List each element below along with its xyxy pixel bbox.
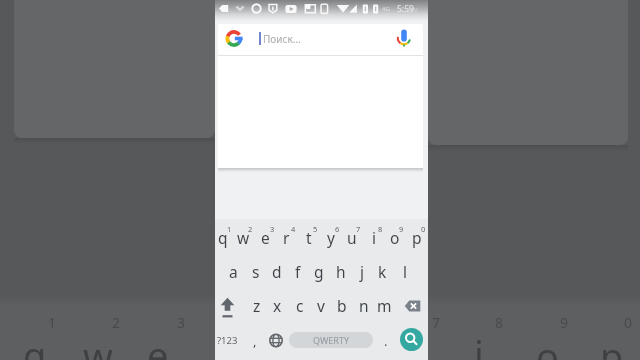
staticText: 8: [378, 224, 383, 234]
staticText: 7: [432, 313, 441, 332]
staticText: 3: [177, 313, 186, 332]
staticText: x: [273, 295, 282, 316]
button[interactable]: QWERTY: [289, 332, 373, 348]
staticText: 0: [421, 224, 426, 234]
staticText: i: [474, 328, 484, 360]
staticText: w: [237, 227, 250, 248]
staticText: 5: [313, 224, 318, 234]
staticText: d: [272, 261, 282, 282]
staticText: t: [306, 227, 312, 248]
staticText: s: [252, 261, 260, 282]
staticText: v: [317, 295, 325, 316]
staticText: 3: [270, 224, 275, 234]
staticText: e: [261, 227, 270, 248]
staticText: Поиск...: [263, 32, 301, 46]
staticText: 9: [399, 224, 404, 234]
staticText: p: [412, 227, 422, 248]
staticText: 9: [560, 313, 569, 332]
staticText: 4: [291, 224, 296, 234]
staticText: a: [229, 261, 238, 282]
staticText: g: [314, 261, 324, 282]
staticText: 1: [227, 224, 232, 234]
staticText: o: [390, 227, 400, 248]
staticText: 2: [112, 313, 121, 332]
staticText: b: [337, 295, 347, 316]
staticText: u: [347, 227, 357, 248]
staticText: k: [378, 261, 387, 282]
button[interactable]: [266, 330, 286, 350]
button[interactable]: [400, 328, 423, 351]
staticText: h: [336, 261, 346, 282]
staticText: QWERTY: [313, 334, 350, 346]
staticText: c: [296, 295, 304, 316]
staticText: 7: [356, 224, 361, 234]
staticText: r: [283, 227, 290, 248]
button[interactable]: [216, 330, 240, 350]
staticText: j: [360, 261, 364, 282]
staticText: f: [295, 261, 301, 282]
staticText: 2: [248, 224, 253, 234]
staticText: m: [377, 295, 392, 316]
staticText: 6: [335, 224, 340, 234]
staticText: e: [147, 329, 169, 360]
staticText: w: [83, 330, 113, 360]
staticText: l: [403, 261, 407, 282]
staticText: 0: [624, 313, 633, 332]
button[interactable]: [404, 296, 426, 316]
staticText: ру: [410, 5, 418, 15]
staticText: q: [23, 329, 47, 360]
staticText: .: [384, 332, 388, 350]
button[interactable]: [216, 296, 240, 316]
staticText: ?123: [217, 334, 238, 347]
staticText: 1: [48, 313, 57, 332]
staticText: 5:59: [397, 3, 414, 15]
button[interactable]: [218, 24, 423, 55]
staticText: n: [359, 295, 369, 316]
staticText: i: [372, 227, 376, 248]
staticText: y: [327, 227, 335, 248]
staticText: 4G: [382, 5, 390, 13]
staticText: z: [253, 295, 261, 316]
staticText: 8: [495, 313, 504, 332]
staticText: p: [600, 330, 624, 360]
staticText: q: [218, 227, 228, 248]
staticText: o: [536, 330, 559, 360]
staticText: ,: [253, 332, 257, 350]
